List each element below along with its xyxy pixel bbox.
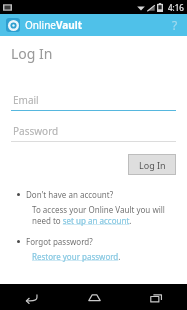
staticText: Don't have an account?	[26, 189, 114, 200]
button[interactable]: Help	[163, 14, 187, 36]
staticText: OnlineVault	[25, 18, 83, 32]
staticText: Log In	[139, 159, 166, 171]
staticText: Log In	[11, 44, 53, 63]
button[interactable]: Back	[0, 284, 63, 310]
button[interactable]: Email	[11, 93, 176, 111]
staticText: Forgot password?	[26, 236, 93, 247]
staticText: 4:16	[168, 2, 184, 13]
staticText: Password	[13, 124, 59, 138]
staticText: To access your Online Vault you will nee…	[32, 204, 176, 226]
staticText: Email	[13, 93, 39, 107]
button[interactable]: Home	[63, 284, 125, 310]
button[interactable]: To access your Online Vault you will nee…	[32, 204, 176, 226]
staticText: ?	[172, 17, 178, 33]
button[interactable]: Restore your password.	[32, 251, 121, 262]
button[interactable]: Log In	[128, 154, 176, 175]
button[interactable]: Recent apps	[125, 284, 187, 310]
staticText: Restore your password.	[32, 251, 121, 262]
button[interactable]: Password	[11, 124, 176, 142]
